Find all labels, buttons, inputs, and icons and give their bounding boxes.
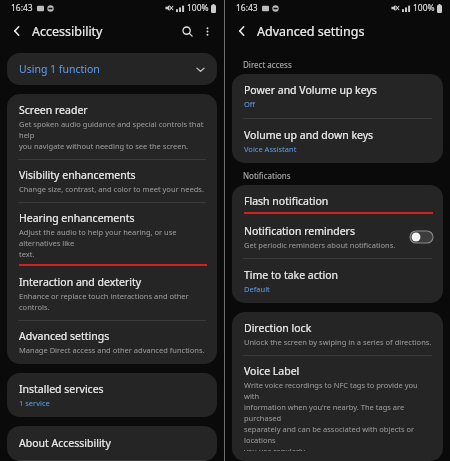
button[interactable]: Advanced settings (7, 321, 217, 364)
staticText: 1 service (19, 398, 50, 408)
staticText: Time to take action (244, 268, 339, 282)
staticText: Manage Direct access and other advanced … (19, 345, 205, 355)
staticText: Flash notification (244, 194, 329, 208)
button[interactable]: Screen reader (7, 94, 217, 159)
button[interactable]: Power and Volume up keys (232, 74, 443, 118)
staticText: Notification reminders (244, 224, 355, 238)
staticText: Screen reader (19, 103, 88, 117)
staticText: Enhance or replace touch interactions an… (19, 291, 207, 312)
staticText: Hearing enhancements (19, 211, 135, 225)
staticText: 100% (187, 2, 209, 14)
staticText: 16:43 (11, 2, 33, 14)
button[interactable]: Hearing enhancements (7, 203, 217, 262)
staticText: 16:43 (236, 2, 258, 14)
staticText: Interaction and dexterity (19, 275, 142, 289)
button[interactable]: Time to take action (232, 259, 443, 303)
staticText: Accessibility (32, 23, 103, 40)
staticText: Notifications (243, 170, 291, 181)
staticText: Voice Label (244, 364, 300, 378)
staticText: Installed services (19, 382, 104, 396)
button[interactable]: Flash notification (232, 185, 443, 218)
staticText: Get spoken audio guidance and special co… (19, 119, 207, 151)
staticText: Change size, contrast, and color to meet… (19, 184, 204, 194)
staticText: Direct access (243, 59, 292, 70)
staticText: Get periodic reminders about notificatio… (244, 240, 396, 250)
button[interactable]: More options (197, 21, 217, 41)
button[interactable]: Interaction and dexterity (7, 269, 217, 320)
staticText: Advanced settings (257, 23, 365, 40)
button[interactable]: Installed services (7, 373, 217, 417)
staticText: Voice Assistant (244, 144, 297, 154)
button[interactable]: About Accessibility (7, 426, 217, 460)
button[interactable]: Hearing enhancements (7, 203, 217, 269)
staticText: Volume up and down keys (244, 128, 374, 142)
button[interactable]: Back (8, 22, 26, 40)
staticText: Using 1 function (19, 62, 100, 76)
button[interactable]: Notification reminders toggle (410, 231, 433, 243)
button[interactable]: Using 1 function (7, 53, 217, 85)
button[interactable]: Volume up and down keys (232, 119, 443, 163)
staticText: Default (244, 284, 270, 294)
button[interactable]: Voice Label (232, 356, 443, 461)
button[interactable]: Search (177, 21, 197, 41)
staticText: Direction lock (244, 321, 312, 335)
staticText: Unlock the screen by swiping in a series… (244, 337, 432, 347)
staticText: Visibility enhancements (19, 168, 136, 182)
staticText: About Accessibility (19, 436, 111, 450)
button[interactable]: Visibility enhancements (7, 160, 217, 202)
staticText: 100% (413, 2, 435, 14)
staticText: Off (244, 99, 256, 109)
staticText: Write voice recordings to NFC tags to pr… (244, 380, 433, 451)
button[interactable]: Direction lock (232, 312, 443, 355)
button[interactable]: Notification reminders (232, 218, 443, 258)
button[interactable]: Back (233, 22, 251, 40)
staticText: Advanced settings (19, 329, 110, 343)
staticText: Adjust the audio to help your hearing, o… (19, 227, 207, 259)
staticText: Power and Volume up keys (244, 83, 377, 97)
